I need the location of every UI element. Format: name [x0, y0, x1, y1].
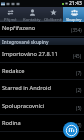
button[interactable]: Přijmé — [0, 7, 21, 22]
staticText: Starred in Android — [2, 84, 76, 92]
button[interactable]: Open app — [63, 122, 79, 138]
staticText: Integrované skupiny — [2, 39, 49, 45]
staticText: (3) — [76, 122, 82, 128]
staticText: (2) — [76, 87, 82, 93]
staticText: Spolupracovníci — [2, 102, 76, 110]
staticText: Redakce — [2, 67, 76, 75]
staticText: Rodina — [2, 119, 76, 127]
staticText: Oblíbené — [44, 17, 62, 22]
staticText: Nepřiřazeno — [2, 24, 71, 32]
button[interactable]: Importováno 27.8.11 — [0, 45, 84, 62]
staticText: Importováno 27.8.11 — [2, 50, 73, 58]
button[interactable]: Rodina — [0, 114, 84, 131]
staticText: (354) — [71, 27, 82, 33]
staticText: Kontakty — [23, 17, 41, 22]
staticText: 21:43 — [69, 0, 82, 7]
staticText: (5) — [76, 105, 82, 111]
staticText: Skupiny — [66, 17, 82, 22]
button[interactable]: Redakce — [0, 62, 84, 79]
staticText: (45) — [73, 53, 82, 59]
button[interactable]: Nepřiřazeno — [0, 19, 84, 36]
button[interactable]: Kontakty — [21, 7, 42, 22]
staticText: (7) — [76, 70, 82, 76]
button[interactable]: Starred in Android — [0, 79, 84, 96]
button[interactable]: Spolupracovníci — [0, 97, 84, 114]
button[interactable]: Skupiny — [63, 7, 84, 22]
staticText: Přijmé — [4, 17, 17, 22]
button[interactable]: Oblíbené — [42, 7, 63, 22]
